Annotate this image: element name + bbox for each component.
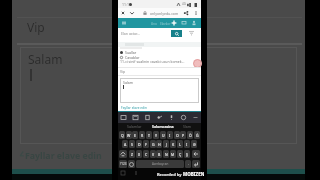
staticText: Ö (189, 133, 192, 138)
button[interactable]: F (143, 140, 149, 148)
staticText: Ğ (196, 133, 199, 138)
button[interactable]: Tool 3 (156, 114, 163, 121)
button[interactable]: Elanlar (160, 22, 171, 26)
staticText: K (172, 142, 175, 147)
button[interactable]: B (156, 150, 162, 158)
button[interactable]: W (126, 131, 132, 139)
button[interactable]: Share (183, 10, 189, 16)
staticText: Salam (28, 51, 63, 67)
button[interactable]: Enter (192, 160, 200, 168)
staticText: . (188, 162, 189, 166)
button[interactable]: E (132, 131, 138, 139)
button[interactable]: Filter (188, 30, 195, 37)
button[interactable]: M (170, 150, 176, 158)
button[interactable]: . (185, 160, 191, 168)
button[interactable]: Elan axtar... (121, 31, 140, 36)
button[interactable]: D (136, 140, 142, 148)
button[interactable]: G (150, 140, 156, 148)
staticText: L (179, 142, 181, 147)
button[interactable]: Collapse (192, 114, 199, 121)
button[interactable]: L (177, 140, 183, 148)
button[interactable]: Shift (119, 150, 127, 158)
staticText: Ş (186, 152, 188, 157)
button[interactable]: Ana (151, 22, 157, 26)
staticText: M (171, 152, 175, 157)
button[interactable]: Tool 4 (168, 114, 175, 121)
button[interactable]: Tool 1 (132, 114, 139, 121)
button[interactable]: P (180, 131, 186, 139)
button[interactable]: S (129, 140, 135, 148)
button[interactable]: Profile (191, 20, 197, 26)
staticText: Ç (179, 152, 182, 157)
button[interactable]: T (146, 131, 152, 139)
staticText: Salamlar (127, 124, 142, 129)
staticText: I (169, 133, 171, 138)
staticText: R (141, 133, 144, 138)
staticText: S (131, 142, 133, 147)
staticText: E (134, 133, 136, 138)
button[interactable]: Ç (177, 150, 183, 158)
button[interactable]: Close (120, 10, 126, 16)
staticText: H (158, 142, 161, 147)
staticText: 11:19 (122, 2, 131, 7)
staticText: 4G (182, 2, 186, 6)
staticText: Azerbaycan (152, 162, 169, 166)
button[interactable]: R (139, 131, 145, 139)
staticText: D (138, 142, 141, 147)
staticText: Vip (27, 19, 45, 35)
button[interactable]: Z (129, 150, 135, 158)
staticText: J (166, 142, 167, 147)
staticText: Suallar (125, 50, 137, 55)
button[interactable]: Menu (193, 10, 199, 16)
staticText: Vip (120, 69, 126, 74)
button[interactable]: X (136, 150, 142, 158)
button[interactable]: Add (171, 20, 177, 26)
button[interactable]: N (163, 150, 169, 158)
button[interactable]: Search (171, 30, 182, 37)
button[interactable]: Tool 2 (144, 114, 151, 121)
button[interactable]: Tool 0 (120, 114, 127, 121)
button[interactable]: Q (119, 131, 125, 139)
button[interactable]: Tab switcher (129, 10, 135, 16)
button[interactable]: Back (134, 171, 138, 175)
button[interactable]: ?123 (119, 160, 127, 168)
button[interactable]: Salam (120, 78, 199, 103)
button[interactable]: I (167, 131, 173, 139)
staticText: Recorded by (157, 172, 183, 177)
button[interactable]: Fayllar elave edin (121, 106, 147, 110)
button[interactable]: Messages (181, 20, 187, 26)
staticText: Q (121, 133, 124, 138)
button[interactable]: J (163, 140, 169, 148)
staticText: C (145, 152, 148, 157)
button[interactable]: Ə (191, 140, 197, 148)
staticText: Fayllar elave edin (25, 150, 102, 162)
staticText: Y (155, 133, 157, 138)
button[interactable]: I (184, 140, 190, 148)
staticText: T (148, 133, 150, 138)
staticText: Salamcasina (152, 124, 174, 129)
button[interactable]: Ğ (194, 131, 200, 139)
button[interactable]: K (170, 140, 176, 148)
staticText: V (152, 152, 155, 157)
staticText: Salam (123, 80, 134, 85)
button[interactable]: Backspace (192, 150, 200, 158)
button[interactable]: H (156, 140, 162, 148)
staticText: Slam (183, 124, 192, 129)
button[interactable]: C (143, 150, 149, 158)
staticText: Cavablar (125, 55, 140, 60)
button[interactable]: Ö (187, 131, 193, 139)
button[interactable]: Azerbaycan (136, 160, 184, 168)
button[interactable]: Emoji (128, 160, 135, 168)
button[interactable]: Recents (121, 171, 125, 175)
button[interactable]: A (122, 140, 128, 148)
button[interactable]: U (160, 131, 166, 139)
button[interactable]: O (174, 131, 180, 139)
staticText: O (176, 133, 179, 138)
staticText: ?123 (120, 162, 127, 166)
button[interactable]: onlyonlyedu.com (150, 11, 179, 16)
button[interactable]: Home (121, 20, 127, 26)
button[interactable]: V (150, 150, 156, 158)
button[interactable]: Ş (184, 150, 190, 158)
button[interactable]: Tool 5 (180, 114, 187, 121)
button[interactable]: Y (153, 131, 159, 139)
